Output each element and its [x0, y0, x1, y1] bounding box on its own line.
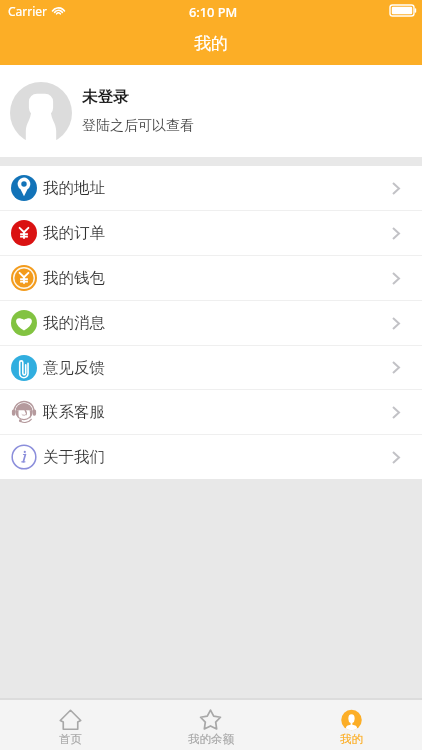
staticText: Carrier	[8, 3, 48, 19]
staticText: 我的订单	[43, 223, 105, 243]
staticText: 我的	[194, 33, 228, 54]
button[interactable]: 关于我们	[0, 435, 422, 479]
button[interactable]: 首页	[0, 700, 140, 750]
button[interactable]: 我的钱包	[0, 256, 422, 301]
staticText: 首页	[59, 732, 82, 746]
staticText: 我的钱包	[43, 268, 105, 288]
button[interactable]: 我的地址	[0, 166, 422, 211]
staticText: 我的余额	[188, 732, 234, 746]
button[interactable]: 我的订单	[0, 211, 422, 256]
staticText: 我的消息	[43, 313, 105, 333]
staticText: 关于我们	[43, 447, 105, 467]
staticText: 登陆之后可以查看	[82, 117, 194, 135]
staticText: 意见反馈	[43, 358, 105, 378]
button[interactable]: 我的消息	[0, 301, 422, 346]
button[interactable]: 我的余额	[140, 700, 281, 750]
staticText: 联系客服	[43, 402, 105, 422]
staticText: 我的	[340, 732, 363, 746]
staticText: 未登录	[82, 87, 129, 107]
staticText: 我的地址	[43, 178, 105, 198]
button[interactable]: 我的	[281, 700, 422, 750]
button[interactable]: 未登录	[0, 65, 422, 157]
button[interactable]: 意见反馈	[0, 346, 422, 390]
button[interactable]: 联系客服	[0, 390, 422, 435]
staticText: 6:10 PM	[189, 3, 238, 20]
